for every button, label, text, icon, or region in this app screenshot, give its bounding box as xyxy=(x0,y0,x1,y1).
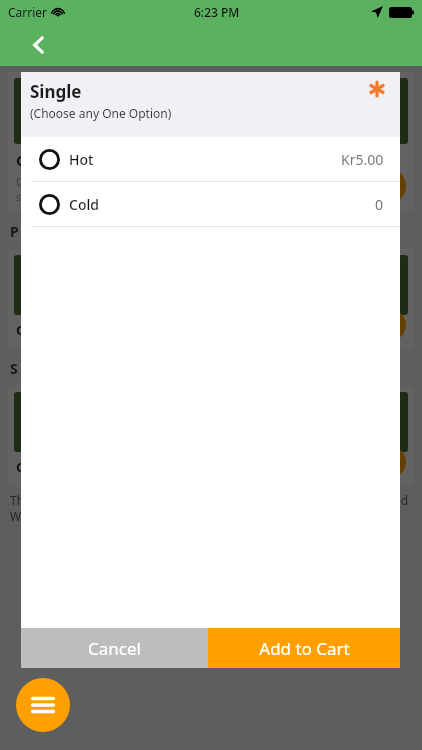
button[interactable]: Grilled Chicken Sandwich xyxy=(8,72,414,212)
button[interactable] xyxy=(374,309,406,341)
button[interactable]: Add to Cart xyxy=(208,628,400,668)
staticText: Grilled Chicken Sandwich xyxy=(16,150,205,170)
staticText: (Choose any One Option) xyxy=(30,105,172,121)
staticText: Cold xyxy=(69,195,99,214)
staticText: CHICKEN SHAWARMA SANDWICH xyxy=(16,321,230,339)
button[interactable]: CHICKEN SHAWARMA SANDWICH xyxy=(8,249,414,349)
staticText: Comes with french fries and special sauc… xyxy=(16,174,161,204)
button[interactable] xyxy=(374,446,406,478)
staticText: CHICKEN SHAWARMA PLATE xyxy=(16,458,196,476)
staticText: Carrier xyxy=(8,4,48,20)
button[interactable] xyxy=(370,168,406,204)
staticText: This Shaved Pieces Of Marinated Chicken … xyxy=(10,492,409,508)
button[interactable]: Back xyxy=(22,28,56,62)
staticText: Single xyxy=(30,80,82,103)
staticText: 0 xyxy=(375,195,384,214)
button[interactable]: Hot xyxy=(21,137,400,181)
button[interactable]: Menu xyxy=(16,678,70,732)
staticText: With French Fries, Mix Pickles, Garlic S… xyxy=(10,508,380,524)
staticText: Add to Cart xyxy=(259,637,350,660)
button[interactable]: CHICKEN SHAWARMA PLATE xyxy=(8,386,414,486)
staticText: 6:23 PM xyxy=(194,4,240,20)
button[interactable]: Cancel xyxy=(21,628,208,668)
staticText: Cancel xyxy=(88,637,141,660)
staticText: Kr5.00 xyxy=(341,150,384,169)
staticText: P xyxy=(10,222,19,241)
staticText: Hot xyxy=(69,150,94,169)
button[interactable]: Cold xyxy=(21,182,400,226)
staticText: S xyxy=(10,359,18,378)
